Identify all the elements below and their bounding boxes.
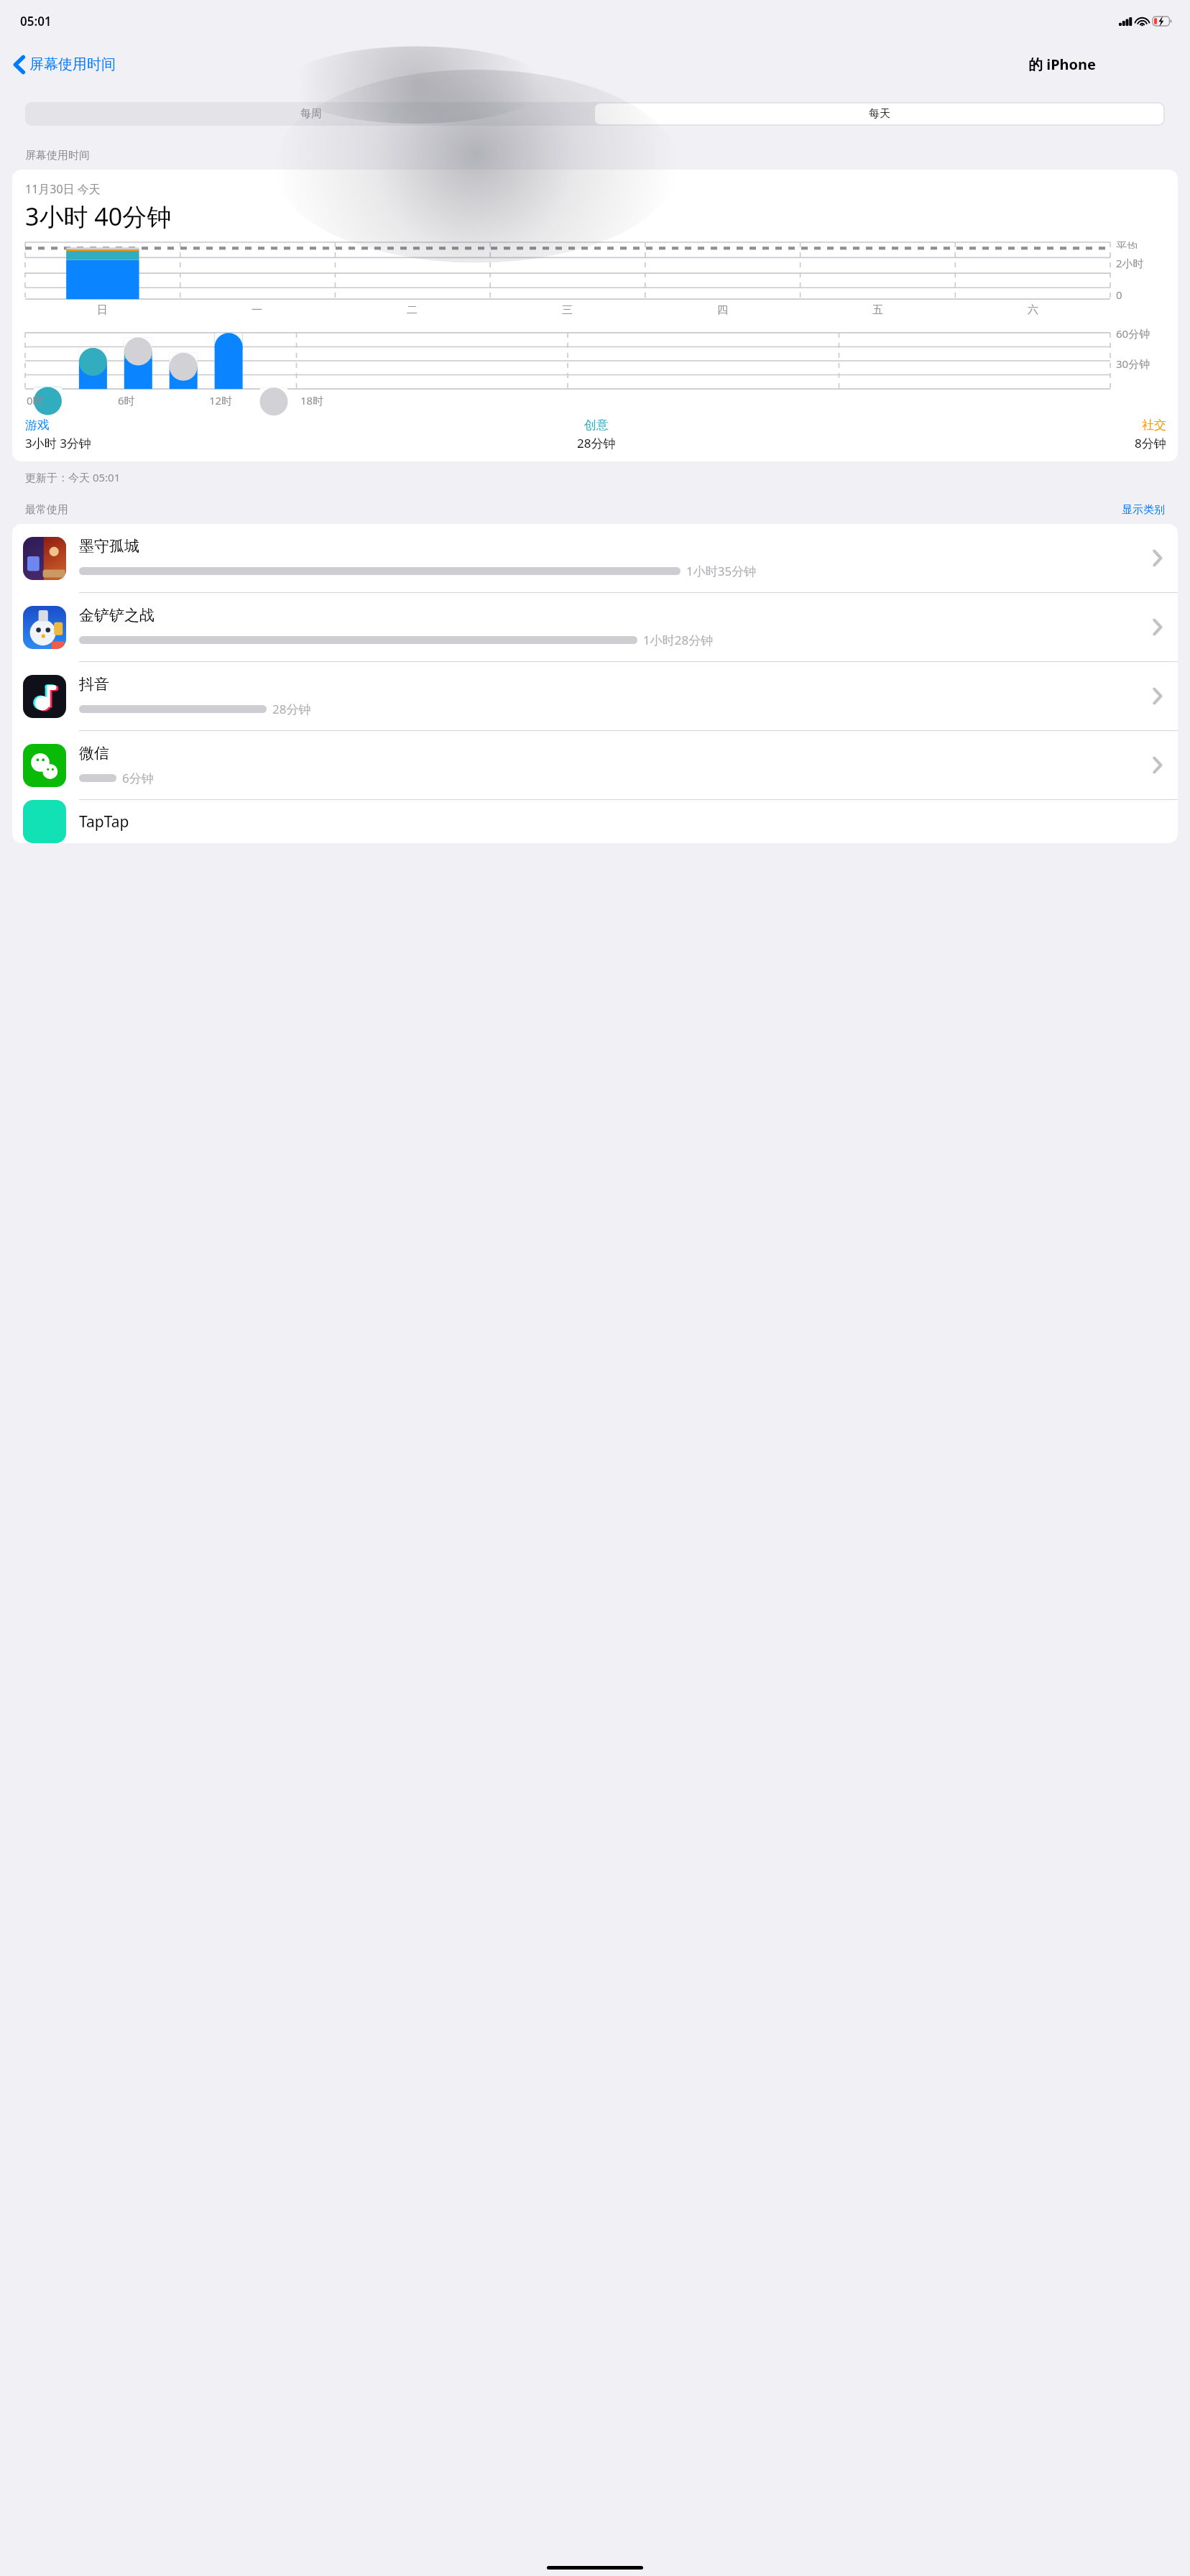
staticText: 11月30日 今天	[25, 181, 101, 197]
button[interactable]: 显示类别	[1122, 503, 1165, 517]
button[interactable]: 返回 屏幕使用时间	[9, 51, 121, 78]
staticText: 更新于：今天 05:01	[25, 470, 121, 484]
staticText: TapTap	[79, 811, 129, 832]
staticText: 抖音	[79, 675, 109, 694]
staticText: 3小时 3分钟	[25, 435, 91, 451]
staticText: 2小时	[1116, 256, 1144, 270]
staticText: 社交	[1142, 418, 1166, 433]
staticText: 平均	[1116, 240, 1138, 249]
staticText: 微信	[79, 744, 109, 763]
staticText: 1小时35分钟	[686, 563, 757, 579]
button[interactable]: 微信	[12, 731, 1178, 799]
staticText: 屏幕使用时间	[25, 149, 90, 162]
staticText: 6时	[118, 393, 135, 408]
staticText: 8分钟	[1135, 435, 1166, 451]
staticText: 金铲铲之战	[79, 606, 154, 625]
button[interactable]: 墨守孤城	[12, 524, 1178, 592]
button[interactable]: TapTap	[12, 800, 1178, 843]
staticText: 五	[872, 303, 883, 317]
staticText: 60分钟	[1116, 326, 1150, 341]
button[interactable]: 每周	[27, 103, 595, 124]
staticText: 05:01	[20, 13, 52, 29]
staticText: 创意	[584, 418, 609, 433]
staticText: 最常使用	[25, 503, 68, 517]
staticText: 一	[252, 303, 262, 317]
staticText: 30分钟	[1116, 356, 1150, 371]
button[interactable]: 抖音	[12, 662, 1178, 730]
staticText: 三	[562, 303, 573, 317]
staticText: 18时	[300, 393, 324, 408]
staticText: 每天	[869, 107, 890, 121]
staticText: 四	[717, 303, 728, 317]
staticText: 3小时 40分钟	[25, 200, 172, 233]
staticText: 六	[1028, 303, 1038, 317]
staticText: 0时	[27, 393, 44, 408]
staticText: 游戏	[25, 418, 50, 433]
staticText: 28分钟	[272, 701, 311, 717]
staticText: 0	[1116, 287, 1122, 302]
staticText: 墨守孤城	[79, 537, 139, 556]
staticText: 28分钟	[577, 435, 616, 451]
staticText: 12时	[209, 393, 233, 408]
staticText: 日	[97, 303, 108, 317]
staticText: 的 iPhone	[1028, 55, 1097, 74]
button[interactable]: 每天	[595, 103, 1163, 124]
staticText: 屏幕使用时间	[29, 55, 116, 73]
staticText: 1小时28分钟	[643, 632, 714, 648]
staticText: 6分钟	[122, 770, 154, 786]
button[interactable]: 金铲铲之战	[12, 593, 1178, 661]
staticText: 每周	[300, 107, 322, 121]
staticText: 二	[407, 303, 418, 317]
staticText: 显示类别	[1122, 503, 1165, 517]
